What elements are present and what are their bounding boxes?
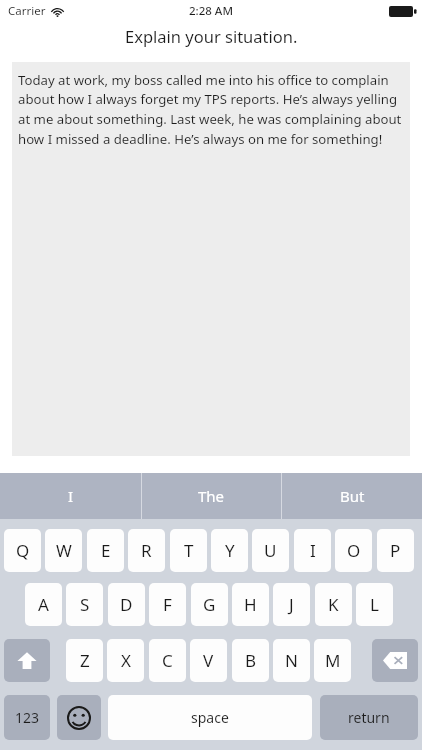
staticText: U [264, 539, 277, 562]
staticText: A [38, 593, 49, 616]
button[interactable]: X [107, 639, 144, 682]
staticText: space [191, 708, 229, 727]
staticText: 123 [15, 708, 40, 727]
staticText: J [289, 593, 294, 616]
staticText: C [162, 649, 173, 672]
button[interactable]: U [252, 529, 289, 572]
button[interactable]: Emoji [57, 695, 101, 740]
staticText: P [390, 539, 401, 562]
button[interactable]: A [25, 583, 62, 626]
staticText: I [68, 486, 74, 506]
staticText: M [325, 649, 341, 672]
button[interactable]: S [66, 583, 103, 626]
button[interactable]: W [45, 529, 82, 572]
button[interactable]: H [232, 583, 269, 626]
staticText: V [203, 649, 214, 672]
staticText: D [120, 593, 133, 616]
staticText: B [245, 649, 257, 672]
staticText: Y [225, 539, 235, 562]
staticText: W [56, 539, 72, 562]
button[interactable]: N [273, 639, 310, 682]
button[interactable]: V [190, 639, 227, 682]
staticText: Today at work, my boss called me into hi… [18, 71, 404, 148]
staticText: K [328, 593, 339, 616]
staticText: The [198, 486, 225, 506]
staticText: X [121, 649, 131, 672]
button[interactable]: I [294, 529, 331, 572]
staticText: R [141, 539, 152, 562]
staticText: return [348, 708, 390, 727]
button[interactable]: Q [4, 529, 41, 572]
button[interactable]: K [315, 583, 352, 626]
staticText: I [310, 539, 316, 562]
staticText: Explain your situation. [125, 25, 298, 47]
button[interactable]: M [314, 639, 351, 682]
button[interactable]: return [320, 695, 418, 740]
staticText: G [203, 593, 216, 616]
button[interactable]: O [335, 529, 372, 572]
staticText: S [80, 593, 90, 616]
button[interactable]: Z [66, 639, 103, 682]
staticText: But [340, 486, 365, 506]
staticText: H [244, 593, 257, 616]
staticText: Z [80, 649, 90, 672]
button[interactable]: J [273, 583, 310, 626]
staticText: N [285, 649, 298, 672]
button[interactable]: The [142, 473, 281, 519]
button[interactable]: Backspace [372, 639, 418, 682]
staticText: 2:28 AM [189, 3, 233, 19]
button[interactable]: P [377, 529, 414, 572]
button[interactable]: R [128, 529, 165, 572]
button[interactable]: B [232, 639, 269, 682]
button[interactable]: G [191, 583, 228, 626]
staticText: T [184, 539, 194, 562]
staticText: L [370, 593, 379, 616]
button[interactable]: E [87, 529, 124, 572]
button[interactable]: F [149, 583, 186, 626]
button[interactable]: But [282, 473, 422, 519]
button[interactable]: Shift [4, 639, 50, 682]
staticText: F [163, 593, 172, 616]
button[interactable]: C [149, 639, 186, 682]
button[interactable]: 123 [4, 695, 50, 740]
button[interactable]: T [170, 529, 207, 572]
button[interactable]: I [0, 473, 141, 519]
button[interactable]: space [108, 695, 312, 740]
button[interactable]: Today at work, my boss called me into hi… [12, 62, 410, 456]
staticText: E [101, 539, 111, 562]
button[interactable]: Y [211, 529, 248, 572]
staticText: Q [16, 539, 30, 562]
button[interactable]: L [356, 583, 393, 626]
staticText: Carrier [8, 3, 46, 19]
staticText: O [347, 539, 361, 562]
button[interactable]: D [108, 583, 145, 626]
